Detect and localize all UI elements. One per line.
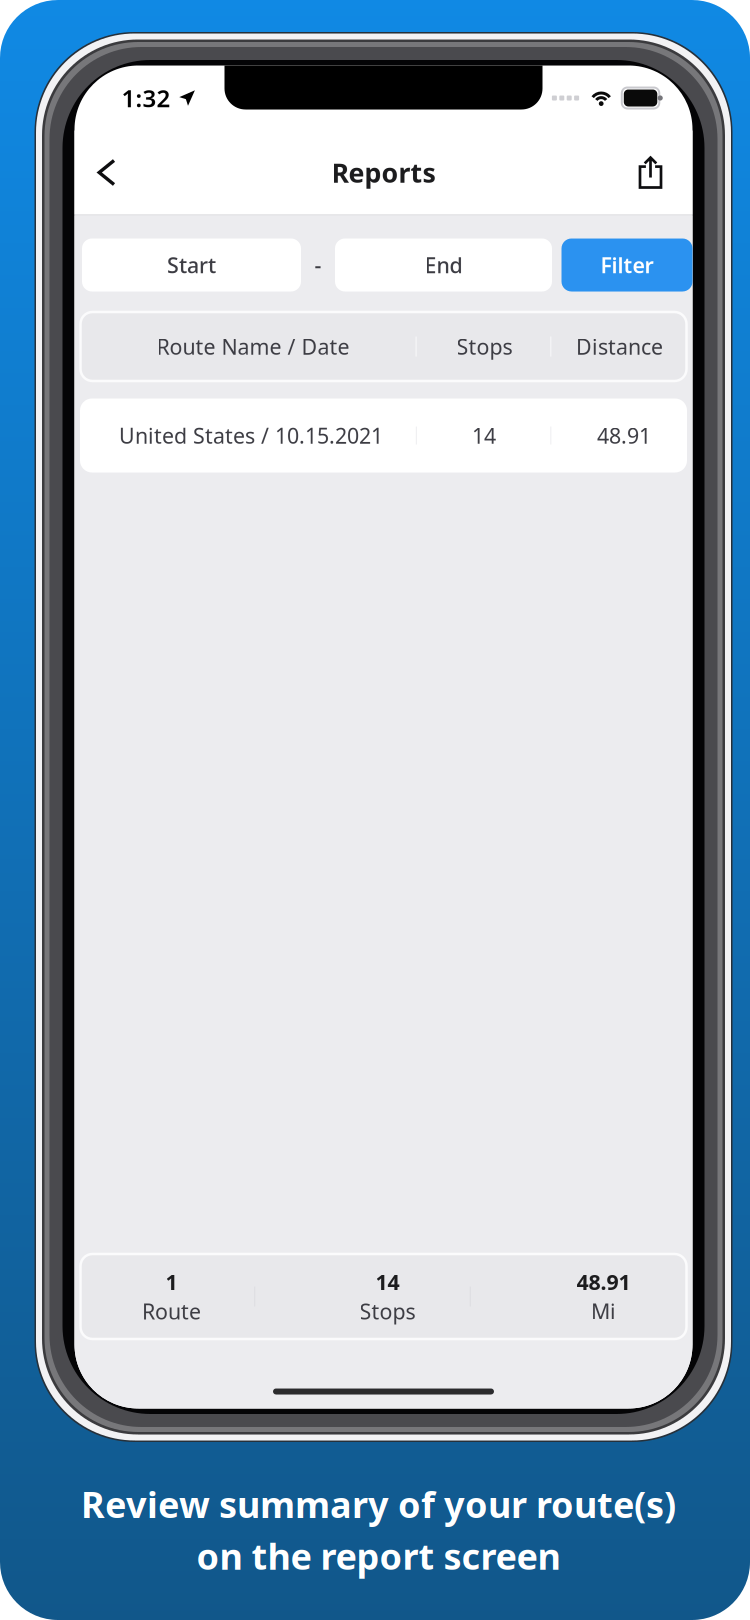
staticText: End [424,251,462,279]
staticText: 48.91 [597,421,651,450]
staticText: 14 [375,1268,399,1296]
staticText: United States / 10.15.2021 [119,421,383,450]
staticText: Mi [591,1297,616,1325]
staticText: Review summary of your route(s) [81,1480,676,1528]
staticText: 1 [165,1268,177,1296]
staticText: on the report screen [196,1532,560,1580]
staticText: Route [142,1297,201,1325]
staticText: 1:32 [121,82,170,114]
button[interactable]: End [335,238,552,291]
staticText: Route Name / Date [156,332,349,361]
staticText: Start [167,251,216,279]
button[interactable]: Back [78,144,134,200]
staticText: 14 [472,421,496,450]
staticText: Stops [359,1297,415,1325]
button[interactable]: Filter [561,238,692,291]
button[interactable]: Start [82,238,301,291]
button[interactable]: United States / 10.15.2021 [80,398,687,472]
staticText: - [314,251,321,279]
staticText: Distance [576,332,663,361]
staticText: Reports [331,155,435,190]
button[interactable]: Share [622,144,678,200]
staticText: 48.91 [576,1268,630,1296]
staticText: Stops [456,332,512,361]
staticText: Filter [600,251,653,279]
